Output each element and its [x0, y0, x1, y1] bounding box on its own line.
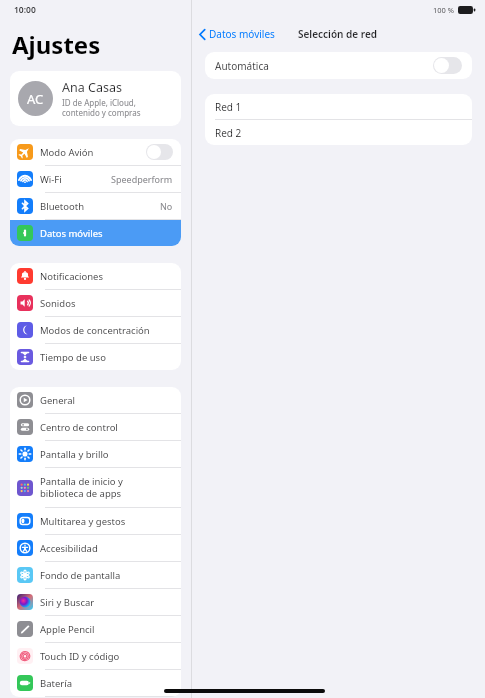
button[interactable]: Batería [10, 670, 181, 696]
button[interactable]: Modos de concentración [10, 317, 181, 343]
staticText: Ajustes [12, 28, 101, 61]
staticText: Touch ID y código [40, 650, 173, 663]
button[interactable]: Modo Avión [146, 144, 173, 160]
staticText: Modo Avión [40, 146, 146, 159]
button[interactable]: Red 1 [205, 94, 472, 119]
staticText: Bluetooth [40, 200, 160, 213]
button[interactable]: AC [10, 71, 181, 126]
button[interactable]: Bluetooth [10, 193, 181, 219]
staticText: No [160, 200, 173, 212]
button[interactable]: Modo Avión [10, 139, 181, 165]
staticText: Automática [215, 59, 433, 73]
button[interactable]: Siri y Buscar [10, 589, 181, 615]
staticText: Apple Pencil [40, 623, 173, 636]
button[interactable]: Datos móviles [10, 220, 181, 246]
button[interactable]: Apple Pencil [10, 616, 181, 642]
staticText: Wi-Fi [40, 173, 111, 186]
staticText: Notificaciones [40, 270, 173, 283]
button[interactable]: Touch ID y código [10, 643, 181, 669]
staticText: Datos móviles [209, 27, 275, 41]
staticText: Red 2 [215, 126, 242, 140]
button[interactable]: General [10, 387, 181, 413]
staticText: Tiempo de uso [40, 351, 173, 364]
button[interactable]: Red 2 [205, 120, 472, 145]
staticText: AC [27, 90, 44, 108]
staticText: Accesibilidad [40, 542, 173, 555]
staticText: 10:00 [14, 4, 36, 16]
staticText: General [40, 394, 173, 407]
button[interactable]: Automática [205, 52, 472, 79]
staticText: ID de Apple, iCloud, contenido y compras [62, 97, 141, 118]
button[interactable]: Accesibilidad [10, 535, 181, 561]
button[interactable]: Pantalla de inicio y biblioteca de apps [10, 468, 181, 507]
button[interactable]: Automática [433, 57, 462, 74]
staticText: Centro de control [40, 421, 173, 434]
staticText: Batería [40, 677, 173, 690]
button[interactable]: Pantalla y brillo [10, 441, 181, 467]
button[interactable]: Fondo de pantalla [10, 562, 181, 588]
staticText: Fondo de pantalla [40, 569, 173, 582]
staticText: Datos móviles [40, 227, 173, 240]
button[interactable]: Notificaciones [10, 263, 181, 289]
staticText: Siri y Buscar [40, 596, 173, 609]
button[interactable]: Sonidos [10, 290, 181, 316]
button[interactable]: Multitarea y gestos [10, 508, 181, 534]
staticText: Modos de concentración [40, 324, 173, 337]
staticText: 100 % [433, 5, 455, 15]
staticText: Pantalla y brillo [40, 448, 173, 461]
button[interactable]: Tiempo de uso [10, 344, 181, 370]
button[interactable]: Centro de control [10, 414, 181, 440]
staticText: Selección de red [298, 27, 378, 41]
staticText: Ana Casas [62, 79, 122, 96]
staticText: Red 1 [215, 100, 242, 114]
button[interactable]: Datos móviles [198, 27, 275, 41]
staticText: Pantalla de inicio y biblioteca de apps [40, 475, 173, 500]
staticText: Speedperform [111, 173, 173, 185]
staticText: Sonidos [40, 297, 173, 310]
button[interactable]: Wi-Fi [10, 166, 181, 192]
staticText: Multitarea y gestos [40, 515, 173, 528]
